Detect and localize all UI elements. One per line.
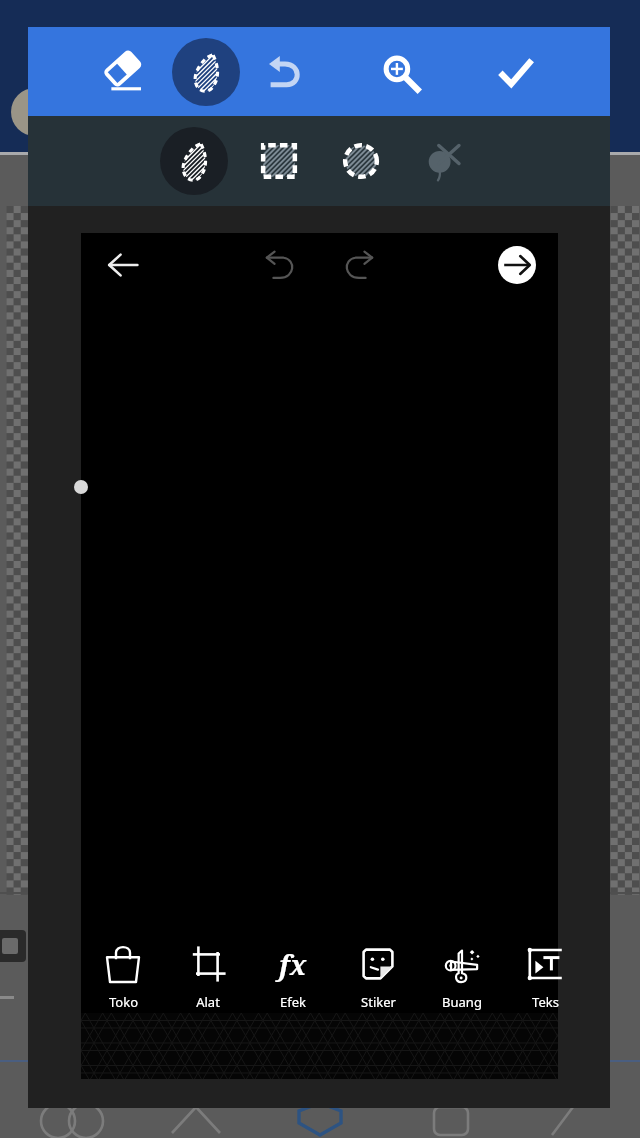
button[interactable]: Lasso select (170, 36, 242, 108)
staticText: Toko (109, 993, 138, 1011)
button[interactable]: Done (480, 36, 552, 108)
button[interactable]: Rectangle select (243, 125, 315, 197)
button[interactable]: Clear selection (407, 125, 479, 197)
button[interactable]: Zoom in (364, 36, 436, 108)
staticText: Teks (532, 993, 559, 1011)
staticText: Efek (280, 993, 306, 1011)
button[interactable]: Ellipse select (325, 125, 397, 197)
button[interactable]: Stiker (336, 943, 420, 1023)
button[interactable]: Undo (249, 36, 321, 108)
button[interactable]: Eraser (86, 36, 158, 108)
button[interactable]: fx (251, 943, 335, 1023)
staticText: Alat (196, 993, 220, 1011)
button[interactable]: Buang (420, 943, 504, 1023)
button[interactable]: Undo (254, 239, 306, 291)
staticText: fx (279, 946, 307, 983)
button[interactable]: Next (498, 246, 536, 284)
button[interactable]: Teks (503, 943, 587, 1023)
button[interactable]: Alat (166, 943, 250, 1023)
button[interactable]: Back (97, 239, 149, 291)
button[interactable]: Redo (333, 239, 385, 291)
button[interactable]: Toko (81, 943, 165, 1023)
staticText: Buang (442, 993, 482, 1011)
staticText: Stiker (361, 993, 396, 1011)
button[interactable]: Free select (158, 125, 230, 197)
